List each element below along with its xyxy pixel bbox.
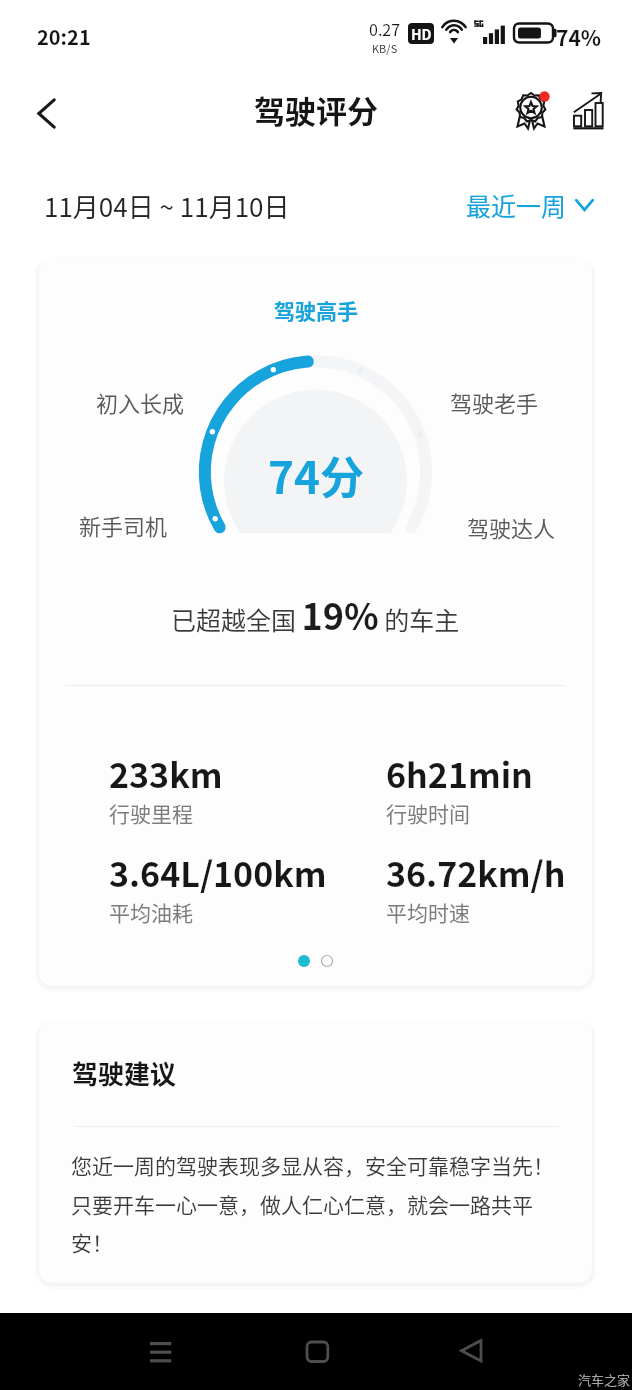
staticText: 初入长成 [96, 386, 185, 418]
staticText: 3.64L/100km [109, 848, 327, 897]
staticText: 驾驶高手 [274, 295, 358, 325]
staticText: 233km [109, 749, 223, 798]
staticText: 36.72km/h [386, 848, 566, 897]
staticText: 平均时速 [386, 897, 470, 927]
staticText: 11月04日 ~ 11月10日 [44, 187, 290, 225]
button[interactable]: Recents [126, 1317, 196, 1387]
staticText: 驾驶达人 [467, 511, 556, 543]
staticText: 新手司机 [79, 509, 168, 541]
staticText: 平均油耗 [109, 897, 193, 927]
button[interactable]: Back [436, 1316, 506, 1386]
staticText: 驾驶老手 [450, 386, 539, 418]
staticText: 0.27 [369, 17, 401, 40]
staticText: 行驶时间 [386, 798, 470, 828]
button[interactable]: Statistics [559, 81, 619, 141]
staticText: 20:21 [37, 22, 91, 51]
staticText: 74分 [268, 443, 364, 507]
staticText: 74% [556, 22, 602, 52]
staticText: 行驶里程 [109, 798, 193, 828]
staticText: 驾驶评分 [254, 87, 378, 132]
staticText: 已超越全国 19% 的车主 [171, 588, 460, 640]
button[interactable]: Back [14, 81, 78, 145]
button[interactable]: Achievements [504, 81, 564, 141]
button[interactable]: 最近一周 [466, 187, 594, 223]
staticText: 您近一周的驾驶表现多显从容，安全可靠稳字当先！只要开车一心一意，做人仁心仁意，就… [71, 1150, 563, 1257]
staticText: KB/S [372, 40, 398, 56]
staticText: 6h21min [386, 749, 533, 798]
staticText: HD [411, 24, 432, 44]
button[interactable]: Home [282, 1317, 352, 1387]
staticText: 最近一周 [466, 187, 567, 223]
staticText: 汽车之家 [578, 1370, 631, 1389]
staticText: 驾驶建议 [72, 1054, 177, 1092]
